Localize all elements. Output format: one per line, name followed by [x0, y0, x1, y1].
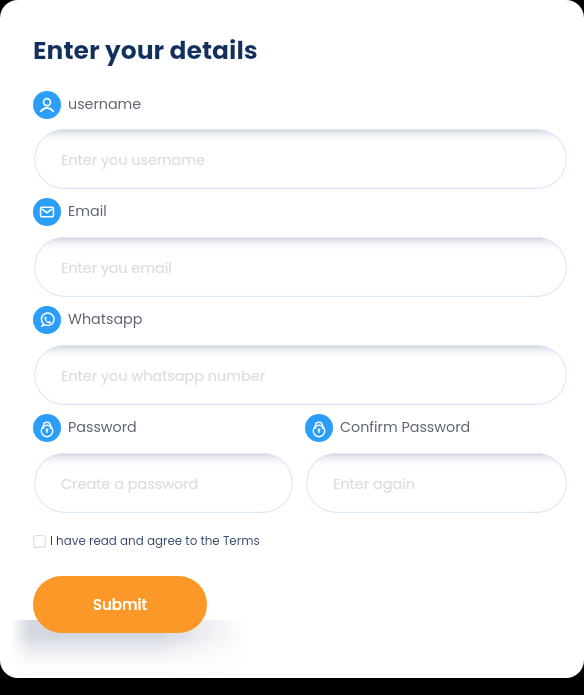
staticText: Confirm Password: [340, 417, 471, 437]
staticText: Whatsapp: [68, 309, 143, 329]
staticText: username: [68, 94, 142, 114]
other: Password: [33, 414, 61, 442]
staticText: Email: [68, 201, 107, 221]
other: Whatsapp: [33, 306, 61, 334]
button[interactable]: Enter again: [306, 453, 567, 513]
staticText: Enter you username: [61, 150, 206, 170]
button[interactable]: Enter you email: [34, 237, 567, 297]
staticText: Create a password: [61, 474, 199, 494]
other: Email: [33, 198, 61, 226]
staticText: Enter you whatsapp number: [61, 366, 266, 386]
staticText: I have read and agree to the Terms: [50, 533, 260, 550]
staticText: Enter again: [333, 474, 415, 494]
button[interactable]: Enter you username: [34, 129, 567, 189]
other: Confirm password: [305, 414, 333, 442]
button[interactable]: I have read and agree to the Terms: [33, 533, 260, 550]
staticText: Enter you email: [61, 258, 172, 278]
staticText: Enter your details: [33, 33, 258, 68]
other: User: [33, 91, 61, 119]
staticText: Password: [68, 417, 137, 437]
button[interactable]: Create a password: [34, 453, 293, 513]
staticText: Submit: [93, 594, 148, 615]
button[interactable]: Enter you whatsapp number: [34, 345, 567, 405]
button[interactable]: Submit: [33, 576, 207, 633]
